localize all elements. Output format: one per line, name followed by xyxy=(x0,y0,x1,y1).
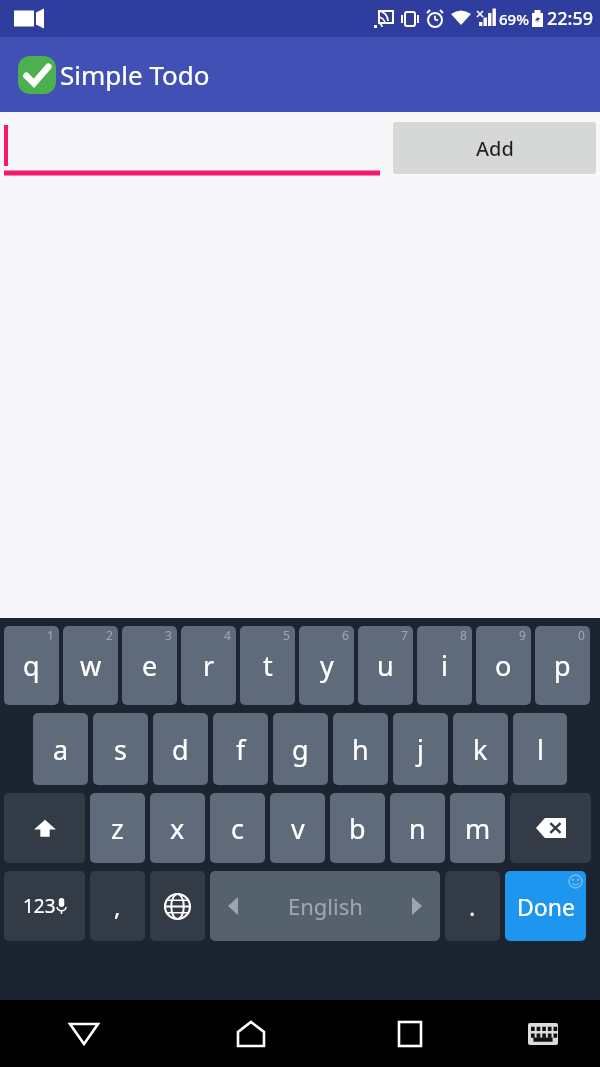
staticText: l xyxy=(537,731,544,768)
staticText: Simple Todo xyxy=(60,57,210,92)
button[interactable]: w xyxy=(63,626,118,705)
staticText: 5 xyxy=(283,627,290,643)
button[interactable]: Backspace xyxy=(510,793,591,863)
staticText: 7 xyxy=(401,627,408,643)
staticText: , xyxy=(114,890,121,923)
staticText: g xyxy=(292,731,309,768)
staticText: u xyxy=(377,647,394,684)
staticText: 123 xyxy=(23,893,56,919)
staticText: c xyxy=(231,810,244,847)
button[interactable]: l xyxy=(513,713,567,785)
staticText: x xyxy=(170,810,185,847)
button[interactable]: d xyxy=(153,713,208,785)
staticText: r xyxy=(203,647,215,684)
button[interactable]: Numbers and voice input xyxy=(4,871,85,941)
button[interactable]: , xyxy=(90,871,145,941)
staticText: 2 xyxy=(106,627,113,643)
button[interactable]: Recents xyxy=(334,1000,486,1067)
button[interactable]: i xyxy=(417,626,472,705)
staticText: d xyxy=(172,731,189,768)
staticText: k xyxy=(473,731,488,768)
button[interactable]: a xyxy=(33,713,88,785)
button[interactable]: English xyxy=(210,871,440,941)
staticText: o xyxy=(495,647,512,684)
button[interactable]: q xyxy=(4,626,59,705)
button[interactable]: x xyxy=(150,793,205,863)
button[interactable]: r xyxy=(181,626,236,705)
staticText: a xyxy=(53,731,69,768)
button[interactable]: j xyxy=(393,713,448,785)
staticText: h xyxy=(352,731,369,768)
staticText: 3 xyxy=(165,627,172,643)
staticText: . xyxy=(469,890,476,923)
staticText: p xyxy=(554,647,571,684)
staticText: v xyxy=(291,810,305,847)
button[interactable]: n xyxy=(390,793,445,863)
button[interactable]: e xyxy=(122,626,177,705)
button[interactable]: f xyxy=(213,713,268,785)
staticText: m xyxy=(465,810,491,847)
staticText: b xyxy=(349,810,366,847)
staticText: 6 xyxy=(342,627,349,643)
button[interactable]: Done xyxy=(505,871,586,941)
button[interactable]: p xyxy=(535,626,590,705)
button[interactable]: b xyxy=(330,793,385,863)
staticText: 9 xyxy=(519,627,526,643)
staticText: 69% xyxy=(499,9,529,29)
button[interactable]: . xyxy=(445,871,500,941)
staticText: w xyxy=(80,647,102,684)
button[interactable]: y xyxy=(299,626,354,705)
button[interactable]: g xyxy=(273,713,328,785)
button[interactable]: Back xyxy=(0,1000,167,1067)
button[interactable]: Shift xyxy=(4,793,85,863)
button[interactable]: t xyxy=(240,626,295,705)
staticText: i xyxy=(441,647,448,684)
button[interactable]: o xyxy=(476,626,531,705)
button[interactable]: Home xyxy=(167,1000,334,1067)
button[interactable]: Switch keyboard xyxy=(486,1000,600,1067)
button[interactable]: Change language xyxy=(150,871,205,941)
staticText: 1 xyxy=(47,627,54,643)
staticText: t xyxy=(263,647,273,684)
button[interactable]: Add xyxy=(393,122,596,174)
staticText: e xyxy=(142,647,158,684)
button[interactable]: m xyxy=(450,793,505,863)
staticText: q xyxy=(23,647,40,684)
staticText: 8 xyxy=(460,627,467,643)
button[interactable]: k xyxy=(453,713,508,785)
staticText: j xyxy=(417,731,424,768)
staticText: f xyxy=(236,731,246,768)
button[interactable] xyxy=(0,120,380,178)
button[interactable]: u xyxy=(358,626,413,705)
button[interactable]: h xyxy=(333,713,388,785)
staticText: 0 xyxy=(578,627,585,643)
staticText: Add xyxy=(476,135,514,162)
button[interactable]: v xyxy=(270,793,325,863)
staticText: 4 xyxy=(224,627,231,643)
button[interactable]: s xyxy=(93,713,148,785)
button[interactable]: c xyxy=(210,793,265,863)
staticText: English xyxy=(288,891,363,921)
staticText: s xyxy=(114,731,127,768)
staticText: n xyxy=(409,810,426,847)
button[interactable]: z xyxy=(90,793,145,863)
staticText: y xyxy=(320,647,334,684)
staticText: 22:59 xyxy=(547,6,594,31)
staticText: Done xyxy=(517,891,575,922)
staticText: z xyxy=(111,810,124,847)
